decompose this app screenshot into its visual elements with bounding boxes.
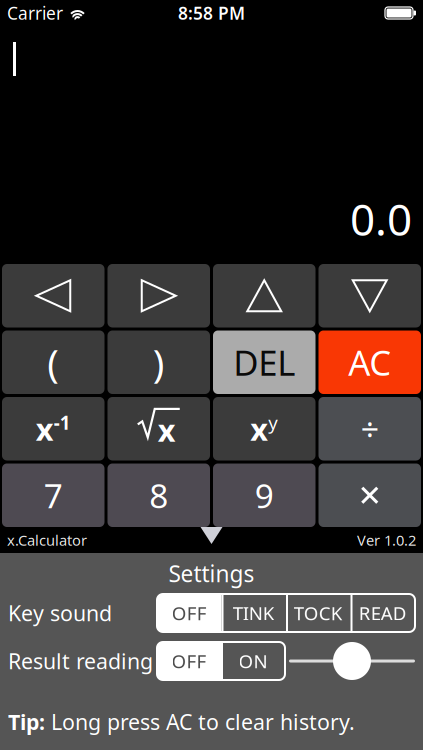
staticText: 8 <box>149 473 168 517</box>
staticText: x.Calculator <box>7 530 87 550</box>
staticText: xy <box>250 408 278 449</box>
button[interactable]: ) <box>107 330 210 394</box>
button[interactable]: Square root <box>107 397 210 460</box>
staticText: OFF <box>172 601 207 625</box>
button[interactable]: TINK <box>221 594 286 632</box>
staticText: Settings <box>168 558 254 588</box>
button[interactable]: 7 <box>2 463 104 527</box>
button[interactable]: 8 <box>107 463 210 527</box>
button[interactable]: DEL <box>213 330 315 394</box>
button[interactable]: ( <box>2 330 104 394</box>
staticText: ) <box>153 337 165 388</box>
button[interactable]: History previous <box>213 264 315 327</box>
button[interactable]: Move cursor left <box>2 264 104 327</box>
staticText: 8:58 PM <box>178 1 245 24</box>
staticText: 0.0 <box>350 190 412 248</box>
button[interactable]: Power <box>213 397 315 460</box>
button[interactable]: History next <box>318 264 421 327</box>
staticText: ( <box>47 337 59 388</box>
staticText: Tip: <box>8 708 51 736</box>
button[interactable]: TOCK <box>286 594 350 632</box>
button[interactable]: Hide settings <box>189 527 233 553</box>
staticText: Ver 1.0.2 <box>357 530 416 550</box>
staticText: Result reading <box>8 647 153 675</box>
staticText: READ <box>359 601 407 625</box>
staticText: ON <box>238 649 267 673</box>
button[interactable]: 9 <box>213 463 315 527</box>
staticText: AC <box>348 339 391 385</box>
staticText: Carrier <box>7 1 63 24</box>
staticText: x <box>158 409 176 450</box>
button[interactable]: Multiply <box>318 463 421 527</box>
staticText: Long press AC to clear history. <box>51 708 355 736</box>
button[interactable]: OFF <box>157 642 221 680</box>
staticText: x-1 <box>36 408 71 449</box>
button[interactable]: OFF <box>157 594 221 632</box>
staticText: Key sound <box>8 599 112 627</box>
button[interactable]: ÷ <box>318 397 421 460</box>
staticText: ÷ <box>361 407 379 450</box>
button[interactable]: AC <box>318 330 421 394</box>
staticText: TINK <box>233 601 275 625</box>
button[interactable]: Move cursor right <box>107 264 210 327</box>
button[interactable]: Reciprocal <box>2 397 104 460</box>
button[interactable]: READ <box>350 594 415 632</box>
button[interactable]: ON <box>221 642 285 680</box>
staticText: 9 <box>255 473 274 517</box>
staticText: OFF <box>171 649 206 673</box>
staticText: 7 <box>44 473 63 517</box>
staticText: TOCK <box>294 601 343 625</box>
staticText: DEL <box>233 339 295 385</box>
